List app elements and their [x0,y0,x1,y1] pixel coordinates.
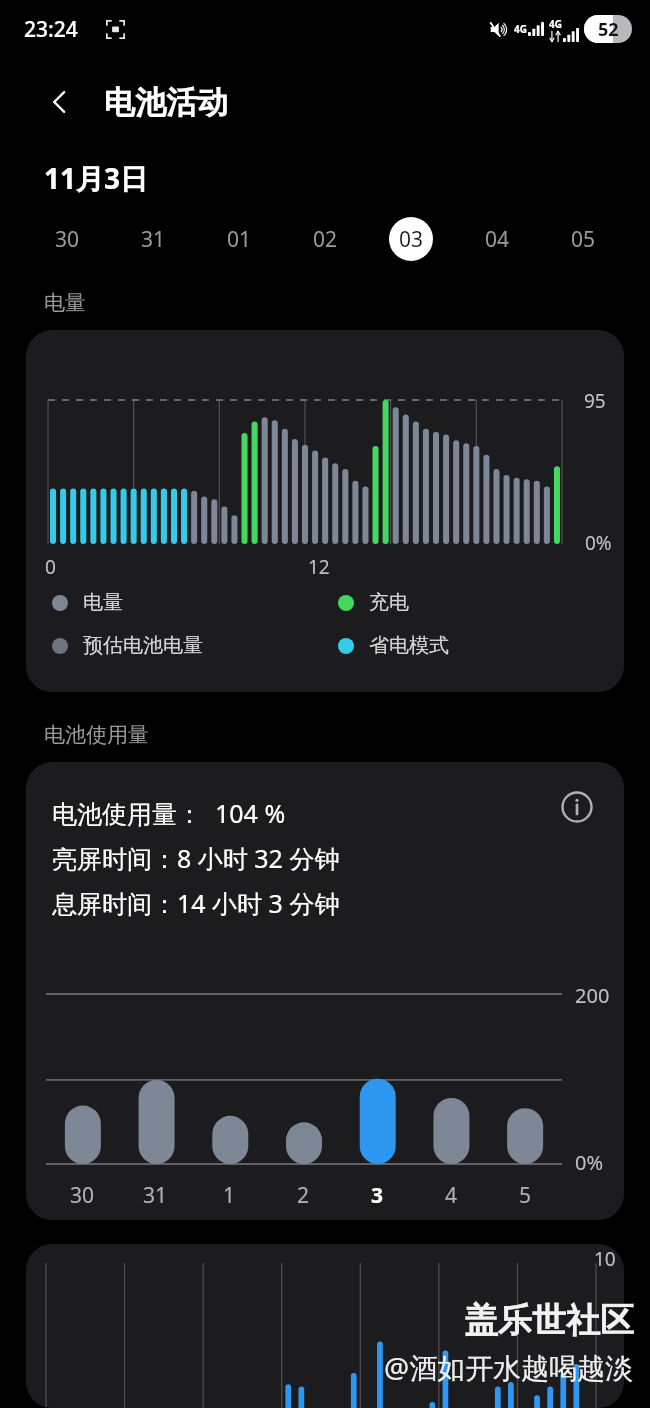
staticText: @酒如开水越喝越淡 [384,1348,634,1386]
staticText: 电池使用量： 104 % [52,796,286,830]
staticText: 31 [143,1181,168,1210]
staticText: 10 [594,1246,616,1272]
button[interactable]: 95 [26,330,624,692]
staticText: 5 [519,1181,532,1210]
staticText: 2 [297,1181,310,1210]
staticText: 52 [598,17,619,42]
staticText: 30 [55,225,80,254]
staticText: 电量 [44,290,86,316]
staticText: 95 [584,388,606,414]
staticText: 02 [313,225,338,254]
button[interactable]: 01 [196,210,282,268]
staticText: 12 [308,554,330,580]
staticText: 01 [227,225,252,254]
staticText: 电量 [83,590,123,615]
staticText: 亮屏时间：8 小时 32 分钟 [52,841,340,875]
staticText: 31 [141,225,166,254]
staticText: 预估电池电量 [83,633,203,658]
staticText: 电池使用量 [44,722,149,748]
staticText: 0% [575,1149,604,1176]
staticText: 04 [485,225,510,254]
staticText: 4G [514,22,527,36]
staticText: 03 [399,225,424,254]
staticText: 3 [371,1181,384,1210]
staticText: 电池活动 [104,83,228,122]
button[interactable]: 03 [368,210,454,268]
staticText: 4G [549,17,562,31]
button[interactable]: 02 [282,210,368,268]
staticText: 0% [585,530,612,556]
staticText: 省电模式 [369,633,449,658]
button[interactable]: 05 [540,210,626,268]
button[interactable]: 31 [110,210,196,268]
staticText: 盖乐世社区 [464,1299,634,1342]
staticText: 充电 [369,590,409,615]
button[interactable]: 30 [24,210,110,268]
staticText: 息屏时间：14 小时 3 分钟 [52,886,340,920]
staticText: 200 [575,982,610,1009]
staticText: 1 [223,1181,236,1210]
staticText: 0 [45,554,56,580]
button[interactable]: Info [556,786,598,828]
button[interactable]: 电池使用量： 104 % [26,762,624,1220]
staticText: 4 [445,1181,458,1210]
staticText: 05 [571,225,596,254]
staticText: 30 [70,1181,95,1210]
button[interactable]: 04 [454,210,540,268]
staticText: 23:24 [24,15,78,44]
button[interactable]: Back [36,78,84,126]
staticText: 11月3日 [44,159,149,197]
